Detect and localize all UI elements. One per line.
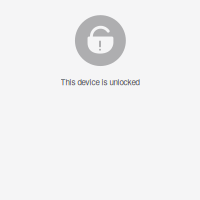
button[interactable]: This device is unlocked: [0, 0, 200, 200]
staticText: This device is unlocked: [60, 76, 139, 87]
